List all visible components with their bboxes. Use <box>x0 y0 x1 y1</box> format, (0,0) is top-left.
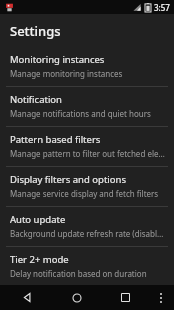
staticText: Display filters and options <box>10 173 126 186</box>
button[interactable]: Home <box>52 285 101 310</box>
staticText: Notification <box>10 93 62 106</box>
button[interactable]: Auto update <box>0 207 174 246</box>
button[interactable]: Monitoring instances <box>0 47 174 86</box>
staticText: Manage service display and fetch filters <box>10 188 159 199</box>
staticText: Background update refresh rate (disabled… <box>10 228 166 239</box>
staticText: Auto update <box>10 213 66 226</box>
button[interactable]: Pattern based filters <box>0 127 174 166</box>
staticText: Default messages, user & parameters <box>10 293 166 303</box>
staticText: 3:57 <box>154 2 170 13</box>
staticText: Monitoring instances <box>10 53 105 66</box>
button[interactable]: More options <box>150 285 172 310</box>
staticText: Manage notifications and quiet hours <box>10 108 151 119</box>
staticText: Pattern based filters <box>10 133 101 146</box>
staticText: Manage monitoring instances <box>10 68 123 79</box>
button[interactable]: Display filters and options <box>0 167 174 206</box>
button[interactable]: Tier 2+ mode <box>0 247 174 286</box>
button[interactable]: Back <box>2 285 52 310</box>
button[interactable]: Default messages, user & parameters <box>0 287 174 310</box>
staticText: Delay notification based on duration <box>10 268 147 279</box>
staticText: Settings <box>10 22 61 40</box>
staticText: Tier 2+ mode <box>10 253 69 266</box>
button[interactable]: Notification <box>0 87 174 126</box>
button[interactable]: Recent apps <box>101 285 150 310</box>
staticText: Manage pattern to filter out fetched ele… <box>10 148 166 159</box>
